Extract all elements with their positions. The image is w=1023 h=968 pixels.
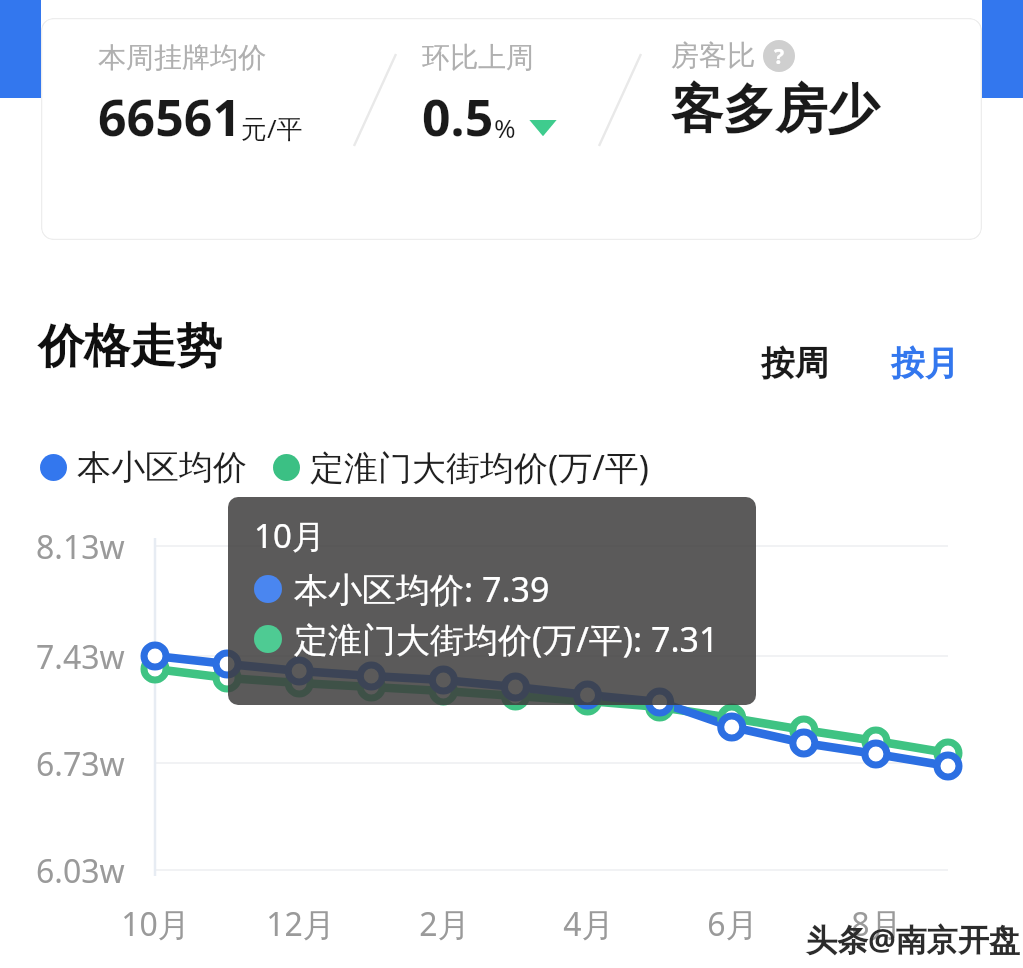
staticText: 0.5 [422,83,494,151]
staticText: 定淮门大街均价(万/平): 7.31 [294,616,719,662]
staticText: 66561 [98,83,241,151]
button[interactable]: 房客比 [671,38,879,143]
staticText: 头条@南京开盘 [806,918,1020,960]
staticText: 元/平 [241,110,303,146]
staticText: % [494,110,516,145]
other: 房客比说明 [763,40,795,72]
staticText: 环比上周 [422,40,534,75]
staticText: 客多房少 [671,77,879,143]
staticText: 房客比 [671,38,755,73]
button[interactable]: 按月 [885,336,965,391]
staticText: ? [774,42,785,71]
staticText: 6月 [707,902,758,946]
staticText: 8.13w [36,525,125,569]
staticText: 本小区均价 [77,446,247,489]
staticText: 7.43w [36,635,125,679]
staticText: 按月 [891,342,959,385]
staticText: 2月 [419,902,470,946]
staticText: 本小区均价: 7.39 [294,566,550,612]
staticText: 按周 [761,342,829,385]
button[interactable]: 环比上周 [422,40,560,151]
staticText: 12月 [266,902,335,946]
staticText: 6.03w [36,849,125,893]
staticText: 8月 [851,902,902,946]
staticText: 4月 [563,902,614,946]
staticText: 6.73w [36,742,125,786]
staticText: 本周挂牌均价 [98,40,266,75]
staticText: 10月 [121,902,190,946]
staticText: 价格走势 [38,318,222,376]
staticText: 10月 [254,513,325,558]
button[interactable]: 按周 [755,336,835,391]
button[interactable]: 本周挂牌均价 [98,40,303,151]
staticText: 定淮门大街均价(万/平) [310,444,650,490]
